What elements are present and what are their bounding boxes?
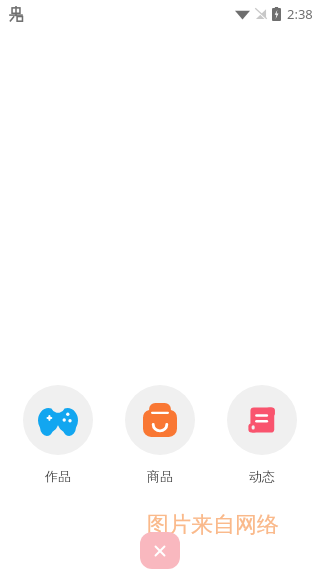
staticText: 动态 (249, 468, 275, 484)
staticText: 图片来自网络 (147, 511, 279, 539)
staticText: 2:38 (287, 5, 313, 23)
staticText: 商品 (147, 468, 173, 484)
button[interactable]: 商品 (116, 385, 204, 484)
button[interactable]: 作品 (14, 385, 102, 484)
button[interactable]: 动态 (218, 385, 306, 484)
staticText: 作品 (45, 468, 71, 484)
button[interactable]: Close (140, 532, 180, 569)
